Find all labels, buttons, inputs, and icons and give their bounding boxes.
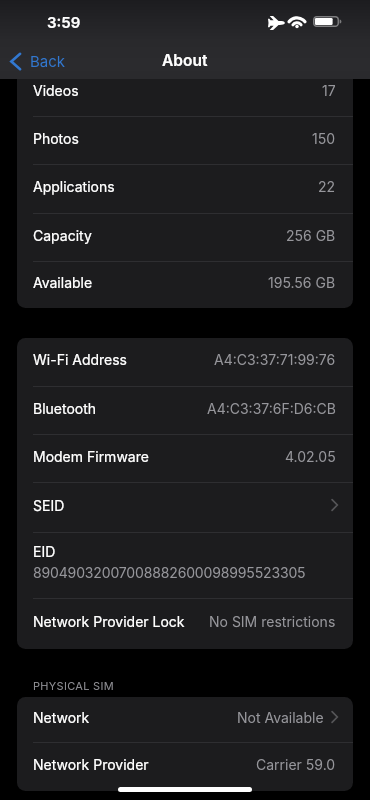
staticText: Not Available [237,709,324,726]
staticText: 22 [318,178,336,195]
button[interactable]: Network Provider [17,743,353,791]
button[interactable]: Photos [17,117,353,165]
staticText: 4.02.05 [285,448,336,465]
staticText: 3:59 [47,13,81,31]
button[interactable]: Capacity [17,214,353,262]
staticText: EID [33,543,56,560]
button[interactable]: Bluetooth [17,387,353,435]
staticText: SEID [33,497,65,514]
staticText: Capacity [33,227,92,244]
staticText: 256 GB [286,227,336,244]
button[interactable]: Network [17,697,353,743]
staticText: Available [33,274,93,291]
staticText: 17 [322,82,336,99]
staticText: A4:C3:37:71:99:76 [214,351,336,368]
staticText: 195.56 GB [268,274,336,291]
staticText: Bluetooth [33,400,97,417]
button[interactable]: Wi-Fi Address [17,338,353,387]
staticText: 89049032007008882600098995523305 [33,564,306,581]
staticText: Network Provider [33,756,149,773]
staticText: About [162,51,208,70]
button[interactable]: EID [17,533,353,599]
staticText: Videos [33,82,79,99]
staticText: Network [33,709,90,726]
button[interactable]: Applications [17,165,353,214]
staticText: Network Provider Lock [33,613,185,630]
staticText: Photos [33,130,79,147]
other: Wi-Fi [288,15,306,28]
button[interactable]: Available [17,262,353,308]
staticText: Modem Firmware [33,448,149,465]
staticText: Wi-Fi Address [33,351,128,368]
staticText: PHYSICAL SIM [33,679,114,692]
staticText: No SIM restrictions [209,613,336,630]
staticText: Applications [33,178,115,195]
staticText: 150 [312,130,336,147]
other: Airplane mode [268,16,285,30]
staticText: Back [30,52,66,70]
staticText: Carrier 59.0 [256,756,336,773]
button[interactable]: Back [10,44,66,79]
button[interactable]: Network Provider Lock [17,599,353,649]
staticText: A4:C3:37:6F:D6:CB [207,400,336,417]
other: Battery [313,16,342,27]
button[interactable]: Modem Firmware [17,435,353,483]
button[interactable]: Videos [17,69,353,117]
button[interactable]: SEID [17,483,353,533]
